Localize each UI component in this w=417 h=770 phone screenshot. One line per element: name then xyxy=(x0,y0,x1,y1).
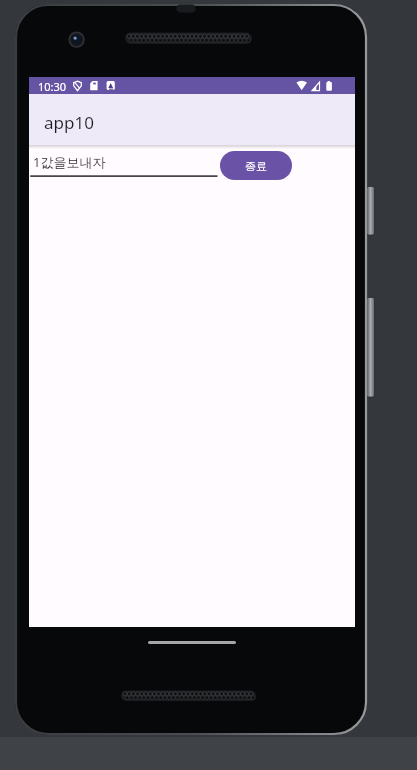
staticText: 종료 xyxy=(245,159,267,173)
staticText: 1값을보내자 xyxy=(33,153,106,171)
button[interactable]: 1값을보내자 xyxy=(29,147,243,179)
button[interactable]: 종료 xyxy=(220,151,292,180)
staticText: 10:30 xyxy=(38,79,67,94)
staticText: app10 xyxy=(44,111,94,134)
